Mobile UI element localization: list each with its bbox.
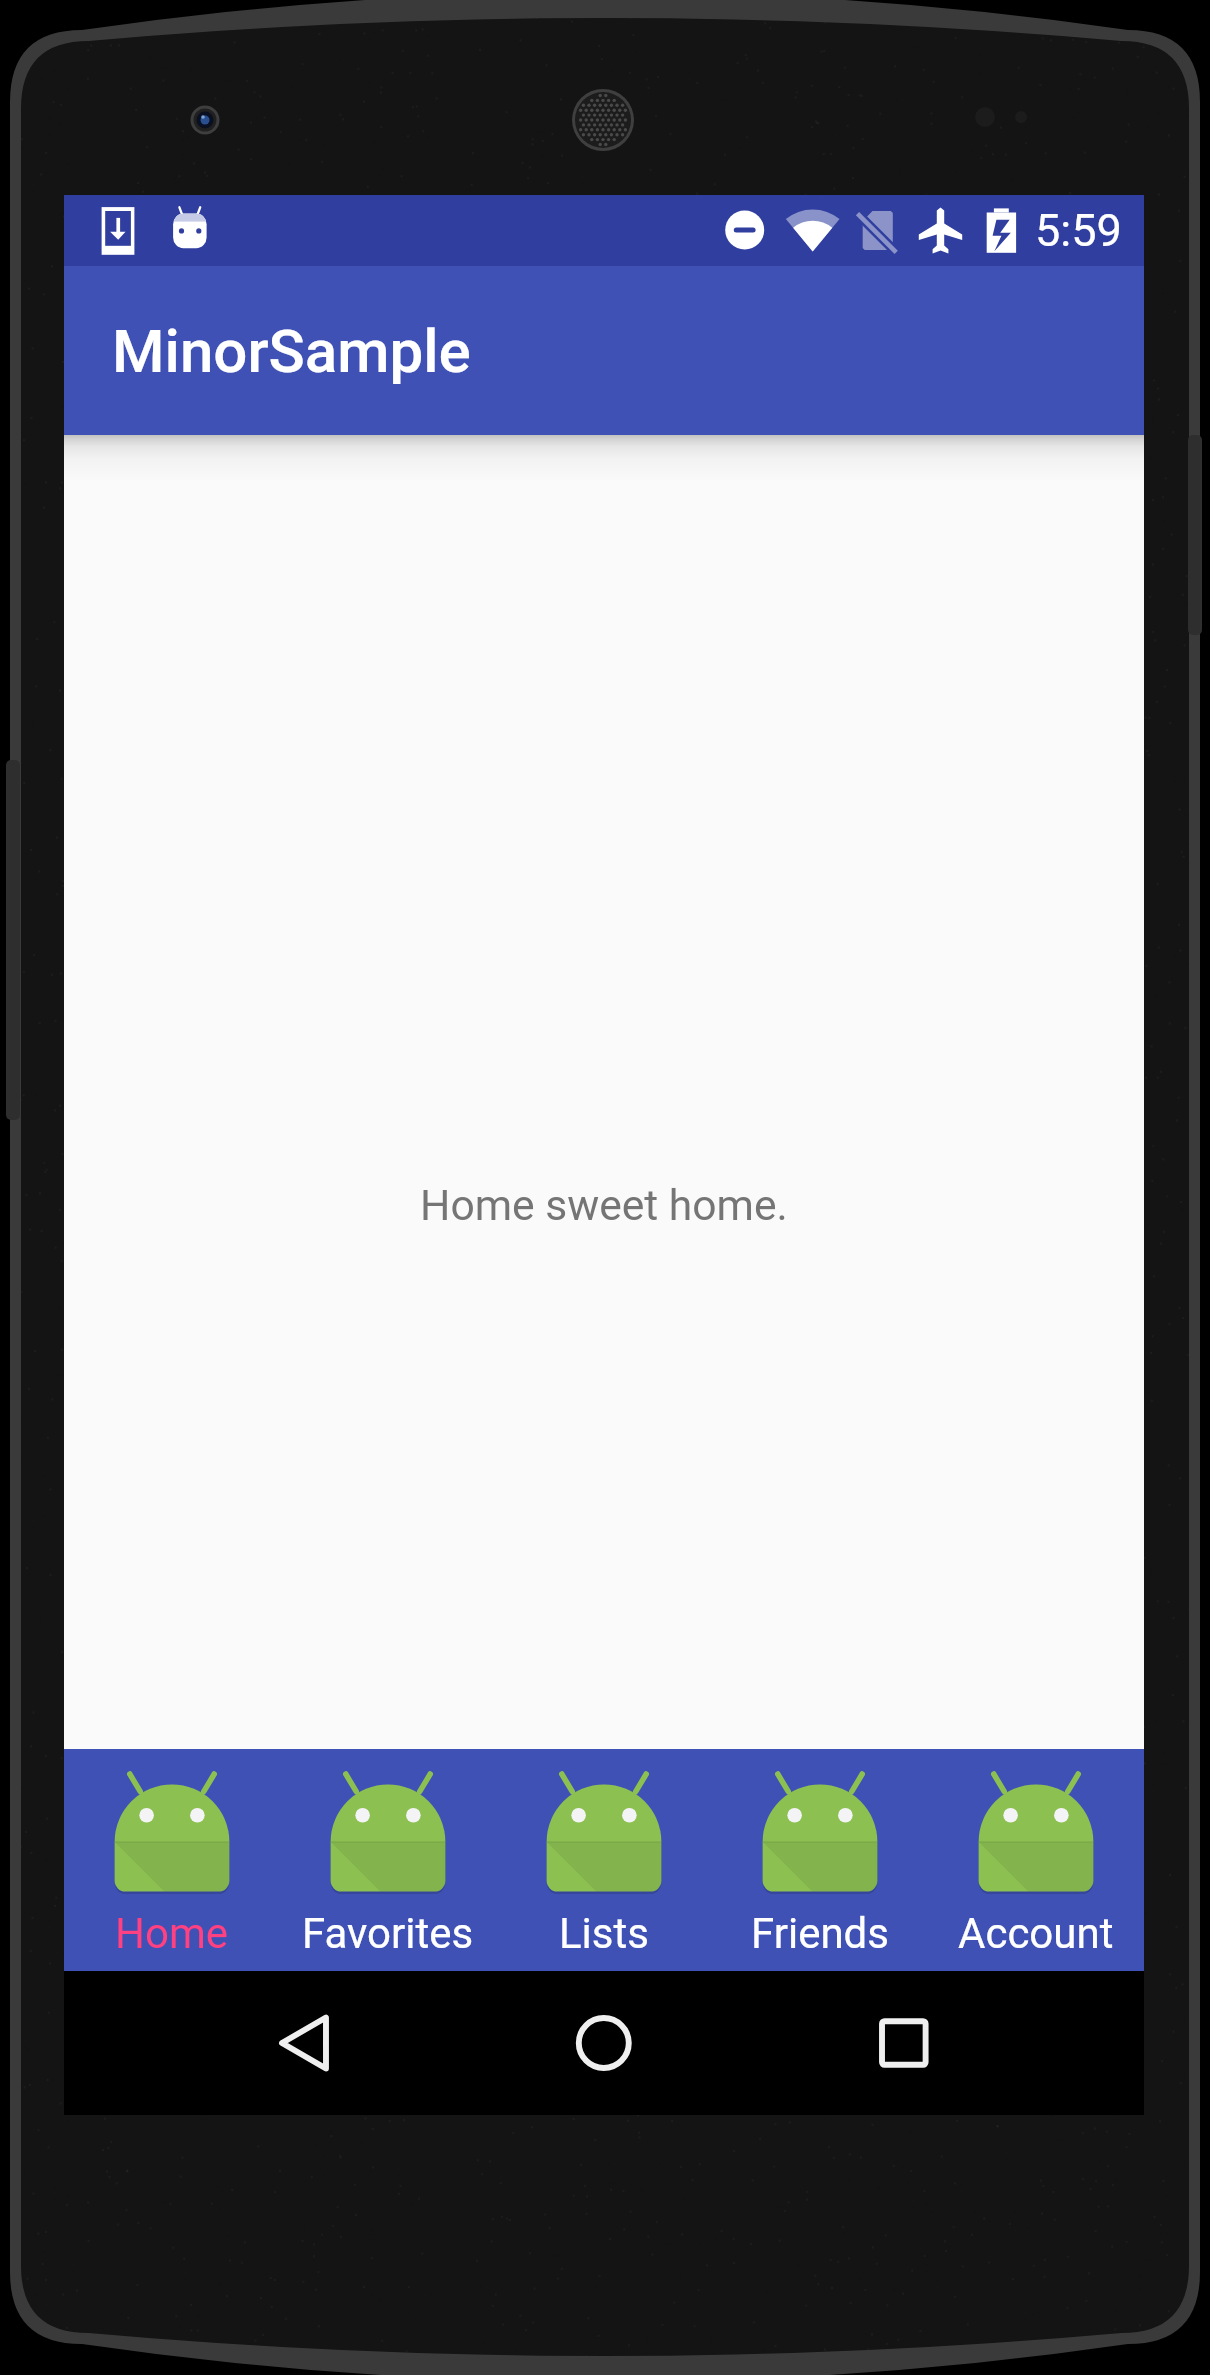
- button[interactable]: Friends: [712, 1749, 928, 1971]
- button[interactable]: Back: [286, 1971, 430, 2115]
- button[interactable]: Favorites: [280, 1749, 496, 1971]
- staticText: Account: [958, 1909, 1114, 1958]
- button[interactable]: Account: [928, 1749, 1144, 1971]
- staticText: Lists: [559, 1909, 649, 1958]
- button[interactable]: Recent apps: [778, 1971, 922, 2115]
- button[interactable]: Home: [532, 1971, 676, 2115]
- staticText: 5:59: [1035, 204, 1122, 257]
- staticText: Favorites: [302, 1909, 474, 1958]
- button[interactable]: Lists: [496, 1749, 712, 1971]
- staticText: Friends: [751, 1909, 889, 1958]
- button[interactable]: Home: [64, 1749, 280, 1971]
- staticText: Home: [115, 1909, 229, 1958]
- staticText: Home sweet home.: [420, 1180, 788, 1230]
- staticText: MinorSample: [112, 316, 471, 386]
